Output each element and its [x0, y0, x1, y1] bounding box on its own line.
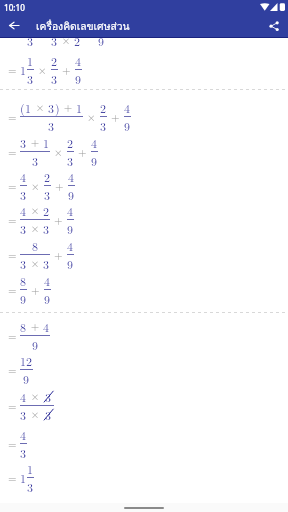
staticText: 9: [75, 70, 82, 87]
staticText: =: [8, 362, 17, 378]
staticText: =: [8, 62, 17, 78]
staticText: 3: [20, 406, 27, 423]
staticText: =: [8, 328, 17, 344]
staticText: 3: [32, 152, 39, 169]
staticText: 4: [124, 99, 131, 116]
staticText: 4: [68, 168, 75, 185]
staticText: ×: [27, 388, 43, 404]
staticText: 9: [67, 220, 74, 237]
staticText: 3: [45, 406, 52, 423]
staticText: 4: [44, 272, 51, 289]
staticText: 4: [91, 134, 98, 151]
staticText: 2: [74, 14, 81, 31]
staticText: 12: [20, 352, 33, 369]
staticText: =: [8, 470, 17, 486]
staticText: +: [31, 282, 40, 298]
staticText: 1: [76, 99, 83, 116]
staticText: 3: [20, 444, 27, 461]
staticText: 3: [100, 117, 107, 134]
staticText: ×: [38, 24, 47, 40]
staticText: 3: [20, 134, 27, 151]
staticText: 4: [98, 14, 105, 31]
staticText: 9: [68, 186, 75, 203]
staticText: ): [55, 99, 60, 116]
staticText: 4: [67, 237, 74, 254]
staticText: ×: [27, 255, 43, 271]
staticText: ×: [32, 99, 48, 115]
staticText: 2: [74, 32, 81, 49]
staticText: ×: [31, 178, 40, 194]
staticText: ×: [27, 220, 43, 236]
staticText: 8: [20, 272, 27, 289]
staticText: 8: [32, 237, 39, 254]
staticText: =: [8, 178, 17, 194]
staticText: 9: [91, 152, 98, 169]
staticText: 3: [51, 32, 58, 49]
staticText: 4: [20, 388, 27, 405]
staticText: =: [8, 212, 17, 228]
button[interactable]: Share: [260, 14, 288, 37]
staticText: 3: [51, 70, 58, 87]
staticText: 10:10: [4, 2, 25, 13]
staticText: =: [8, 144, 17, 160]
staticText: 3: [48, 117, 55, 134]
staticText: ×: [54, 144, 63, 160]
staticText: 1: [20, 23, 27, 40]
staticText: 3: [27, 478, 34, 495]
staticText: ×: [87, 109, 96, 125]
staticText: 4: [20, 426, 27, 443]
staticText: ×: [58, 14, 74, 30]
staticText: +: [111, 109, 120, 125]
staticText: +: [54, 212, 63, 228]
staticText: =: [8, 109, 17, 125]
staticText: 3: [48, 99, 55, 116]
staticText: เครื่องคิดเลขเศษส่วน: [36, 18, 130, 34]
staticText: ×: [38, 62, 47, 78]
staticText: 4: [43, 318, 50, 335]
staticText: 3: [67, 152, 74, 169]
staticText: ×: [58, 32, 74, 48]
staticText: =: [8, 282, 17, 298]
staticText: +: [62, 62, 71, 78]
staticText: 1: [43, 134, 50, 151]
staticText: =: [8, 436, 17, 452]
staticText: 9: [124, 117, 131, 134]
staticText: 9: [23, 370, 30, 387]
staticText: 3: [27, 32, 34, 49]
staticText: 9: [67, 255, 74, 272]
staticText: +: [55, 178, 64, 194]
staticText: 1: [27, 52, 34, 69]
staticText: =: [8, 24, 17, 40]
staticText: 4: [75, 52, 82, 69]
staticText: 3: [44, 186, 51, 203]
staticText: ×: [27, 406, 43, 422]
staticText: =: [8, 247, 17, 263]
staticText: 3: [43, 220, 50, 237]
staticText: 2: [51, 52, 58, 69]
staticText: 3: [43, 255, 50, 272]
staticText: 4: [20, 202, 27, 219]
staticText: 1: [27, 460, 34, 477]
staticText: 3: [20, 220, 27, 237]
staticText: +: [60, 99, 76, 115]
staticText: 2: [100, 99, 107, 116]
staticText: +: [78, 144, 87, 160]
staticText: 4: [67, 202, 74, 219]
staticText: 3: [20, 255, 27, 272]
staticText: 3: [20, 186, 27, 203]
staticText: 1: [51, 14, 58, 31]
staticText: +: [27, 134, 43, 150]
staticText: 3: [45, 388, 52, 405]
staticText: =: [8, 398, 17, 414]
button[interactable]: Back: [0, 14, 28, 37]
staticText: +: [85, 24, 94, 40]
staticText: 2: [43, 202, 50, 219]
staticText: 8: [20, 318, 27, 335]
staticText: +: [27, 318, 43, 334]
staticText: 9: [98, 32, 105, 49]
staticText: 4: [20, 168, 27, 185]
staticText: 9: [32, 336, 39, 353]
staticText: ×: [27, 202, 43, 218]
staticText: 9: [20, 290, 27, 307]
